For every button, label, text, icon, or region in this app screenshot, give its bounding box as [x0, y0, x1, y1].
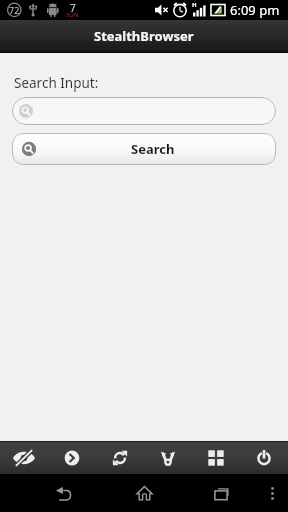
button[interactable]: Tabs	[194, 442, 238, 474]
staticText: Search	[131, 140, 175, 158]
button[interactable]: Search	[12, 133, 276, 165]
button[interactable]	[12, 97, 276, 125]
staticText: 7	[70, 1, 76, 15]
button[interactable]: Stealth mode	[2, 442, 46, 474]
staticText: Search Input:	[14, 74, 99, 92]
button[interactable]: Share	[146, 442, 190, 474]
button[interactable]: Back	[46, 474, 82, 512]
button[interactable]: Home	[126, 474, 162, 512]
staticText: 6:09 pm	[230, 1, 280, 19]
button[interactable]: Refresh	[98, 442, 142, 474]
button[interactable]: Forward	[50, 442, 94, 474]
button[interactable]: Recents	[203, 474, 239, 512]
button[interactable]: More options	[254, 474, 288, 512]
staticText: StealthBrowser	[94, 27, 194, 45]
staticText: H	[192, 1, 197, 9]
button[interactable]: Exit	[242, 442, 286, 474]
staticText: SUN	[66, 11, 79, 19]
staticText: 72	[9, 4, 20, 16]
